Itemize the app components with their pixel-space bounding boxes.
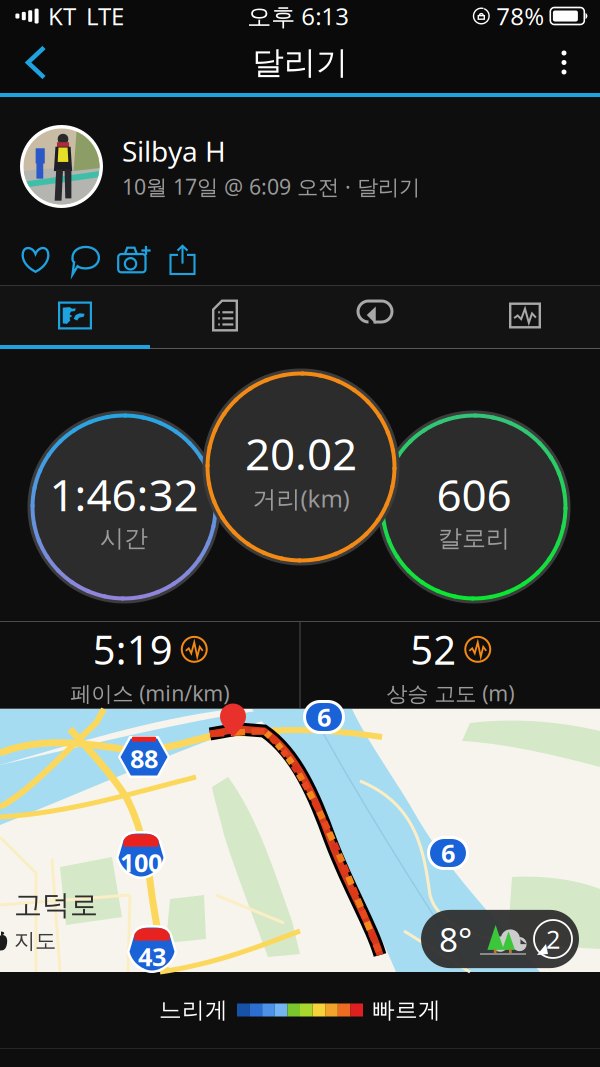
button[interactable]: Comment	[60, 237, 109, 283]
button[interactable]: More options	[535, 32, 593, 93]
staticText: 고덕로	[14, 888, 98, 922]
staticText: 43	[138, 940, 166, 973]
button[interactable]: Add photo	[109, 237, 158, 283]
staticText: 빠르게	[372, 996, 441, 1024]
staticText: 8°	[439, 917, 472, 961]
staticText: 606	[436, 465, 511, 523]
staticText: KT	[48, 0, 76, 32]
staticText: 페이스 (min/km)	[70, 679, 229, 707]
staticText: 상승 고도 (m)	[386, 679, 514, 707]
staticText: Silbya H	[122, 132, 226, 169]
button[interactable]: Charts	[450, 286, 600, 345]
staticText: 느리게	[159, 996, 228, 1024]
button[interactable]: Share	[158, 237, 207, 283]
staticText: 78%	[496, 0, 544, 32]
button[interactable]: Laps	[300, 286, 450, 345]
staticText: 달리기	[252, 43, 348, 82]
staticText: 52	[410, 623, 456, 676]
button[interactable]: Like	[11, 237, 60, 283]
staticText: 100	[120, 846, 162, 879]
staticText: 6	[441, 836, 455, 870]
staticText: 20.02	[245, 424, 357, 482]
staticText: 지도	[14, 928, 56, 954]
staticText: 거리(km)	[252, 482, 349, 514]
staticText: 칼로리	[438, 523, 510, 553]
staticText: 1:46:32	[49, 465, 198, 523]
button[interactable]: Splits	[150, 286, 300, 345]
staticText: 6	[317, 700, 331, 734]
staticText: 5:19	[93, 623, 173, 676]
staticText: 2	[546, 922, 560, 956]
staticText: LTE	[86, 0, 124, 32]
staticText: 시간	[100, 523, 148, 553]
staticText: 오후 6:13	[247, 0, 349, 32]
staticText: 88	[130, 742, 158, 775]
button[interactable]: Back	[7, 32, 65, 93]
button[interactable]: Map	[0, 286, 150, 345]
staticText: 10월 17일 @ 6:09 오전 · 달리기	[122, 172, 420, 201]
